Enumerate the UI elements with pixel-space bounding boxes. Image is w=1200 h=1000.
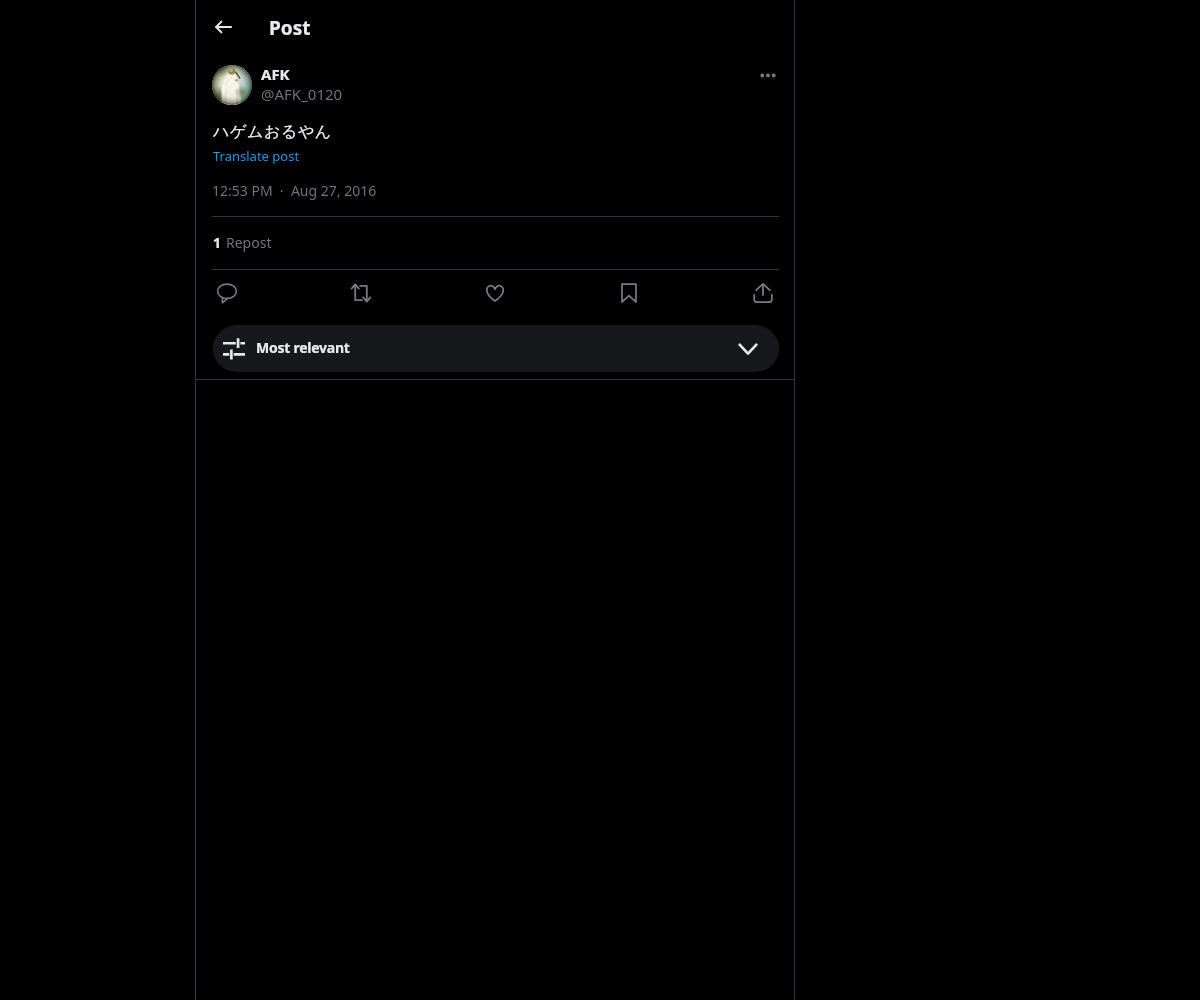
button[interactable]: Translate post xyxy=(212,146,301,166)
button[interactable]: Bookmark xyxy=(612,276,646,310)
staticText: 1 xyxy=(213,233,222,252)
button[interactable]: Most relevant xyxy=(213,325,779,372)
staticText: Repost xyxy=(226,233,272,252)
staticText: Most relevant xyxy=(256,338,350,357)
staticText: ハゲムおるやん xyxy=(213,122,332,142)
staticText: AFK xyxy=(261,64,290,84)
staticText: Translate post xyxy=(213,147,300,165)
button[interactable]: Profile photo xyxy=(212,65,252,105)
button[interactable]: Back xyxy=(205,9,241,45)
button[interactable]: Share xyxy=(746,276,780,310)
button[interactable]: 1 xyxy=(212,230,273,254)
staticText: Post xyxy=(269,15,311,41)
staticText: @AFK_0120 xyxy=(261,84,343,104)
button[interactable]: More options xyxy=(751,58,784,91)
button[interactable]: Reply xyxy=(210,276,244,310)
button[interactable]: Like xyxy=(478,276,512,310)
button[interactable]: Repost xyxy=(344,276,378,310)
staticText: 12:53 PM · Aug 27, 2016 xyxy=(212,181,377,200)
